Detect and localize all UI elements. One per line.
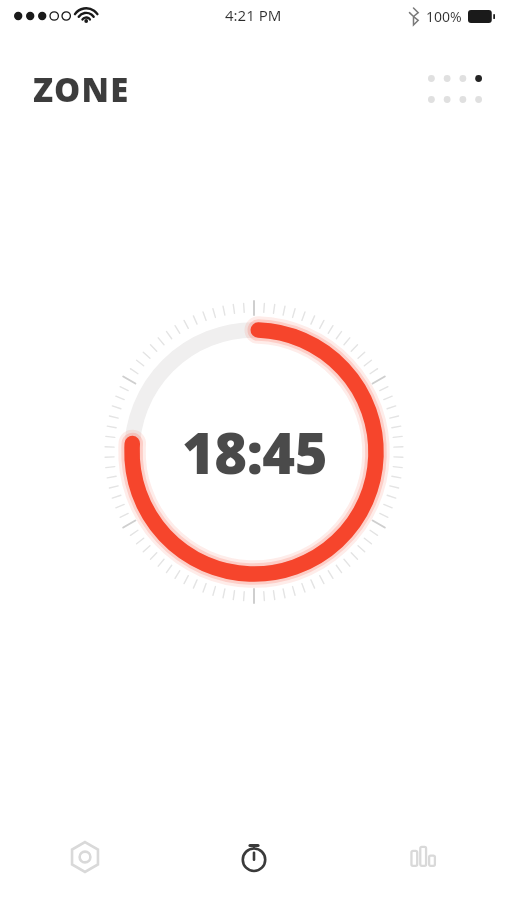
button[interactable]: Timer bbox=[169, 814, 338, 900]
button[interactable]: Menu bbox=[423, 69, 487, 109]
staticText: 4:21 PM bbox=[225, 5, 282, 25]
button[interactable]: ZONE bbox=[33, 67, 130, 112]
button[interactable]: Settings bbox=[0, 814, 169, 900]
staticText: 100% bbox=[426, 7, 462, 26]
staticText: 18:45 bbox=[182, 414, 327, 490]
button[interactable]: Statistics bbox=[338, 814, 507, 900]
button[interactable] bbox=[74, 272, 434, 632]
